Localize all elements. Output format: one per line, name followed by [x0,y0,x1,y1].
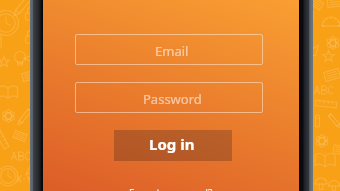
staticText: Log in [149,134,195,154]
button[interactable]: Forgot password? [111,186,231,191]
staticText: Email [155,42,189,60]
button[interactable]: Email [75,34,263,65]
staticText: Password [143,90,202,108]
button[interactable]: Log in [114,130,232,161]
button[interactable]: Password [75,82,263,113]
staticText: Forgot password? [129,186,213,191]
